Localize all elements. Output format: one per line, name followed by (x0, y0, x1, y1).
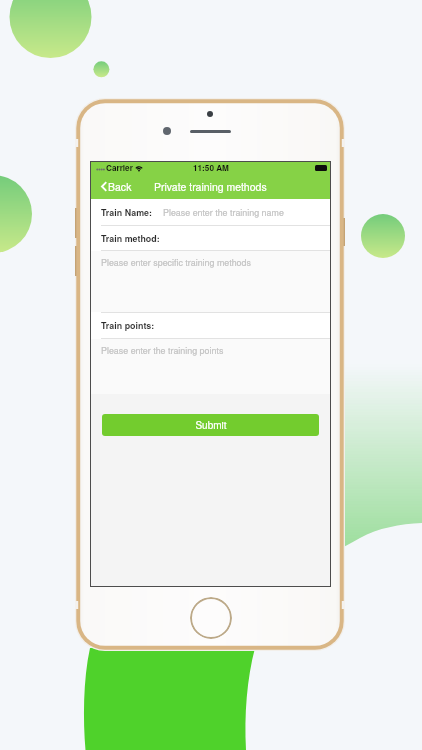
button[interactable]: Please enter specific training methods (91, 251, 330, 312)
staticText: Train Name: (101, 206, 152, 219)
staticText: Please enter specific training methods (101, 256, 251, 269)
button[interactable]: Please enter the training points (91, 339, 330, 394)
staticText: Please enter the training points (101, 344, 224, 357)
button[interactable]: Back (91, 175, 138, 198)
staticText: Carrier (106, 162, 133, 174)
staticText: Please enter the training name (163, 206, 284, 219)
button[interactable]: Train Name: (91, 199, 330, 225)
staticText: Private training methods (154, 179, 267, 194)
button[interactable]: Submit (102, 414, 319, 436)
staticText: Back (108, 179, 132, 194)
staticText: Submit (195, 418, 227, 432)
staticText: Train method: (101, 232, 160, 245)
staticText: 11:50 AM (193, 162, 229, 174)
staticText: Train points: (101, 319, 155, 332)
